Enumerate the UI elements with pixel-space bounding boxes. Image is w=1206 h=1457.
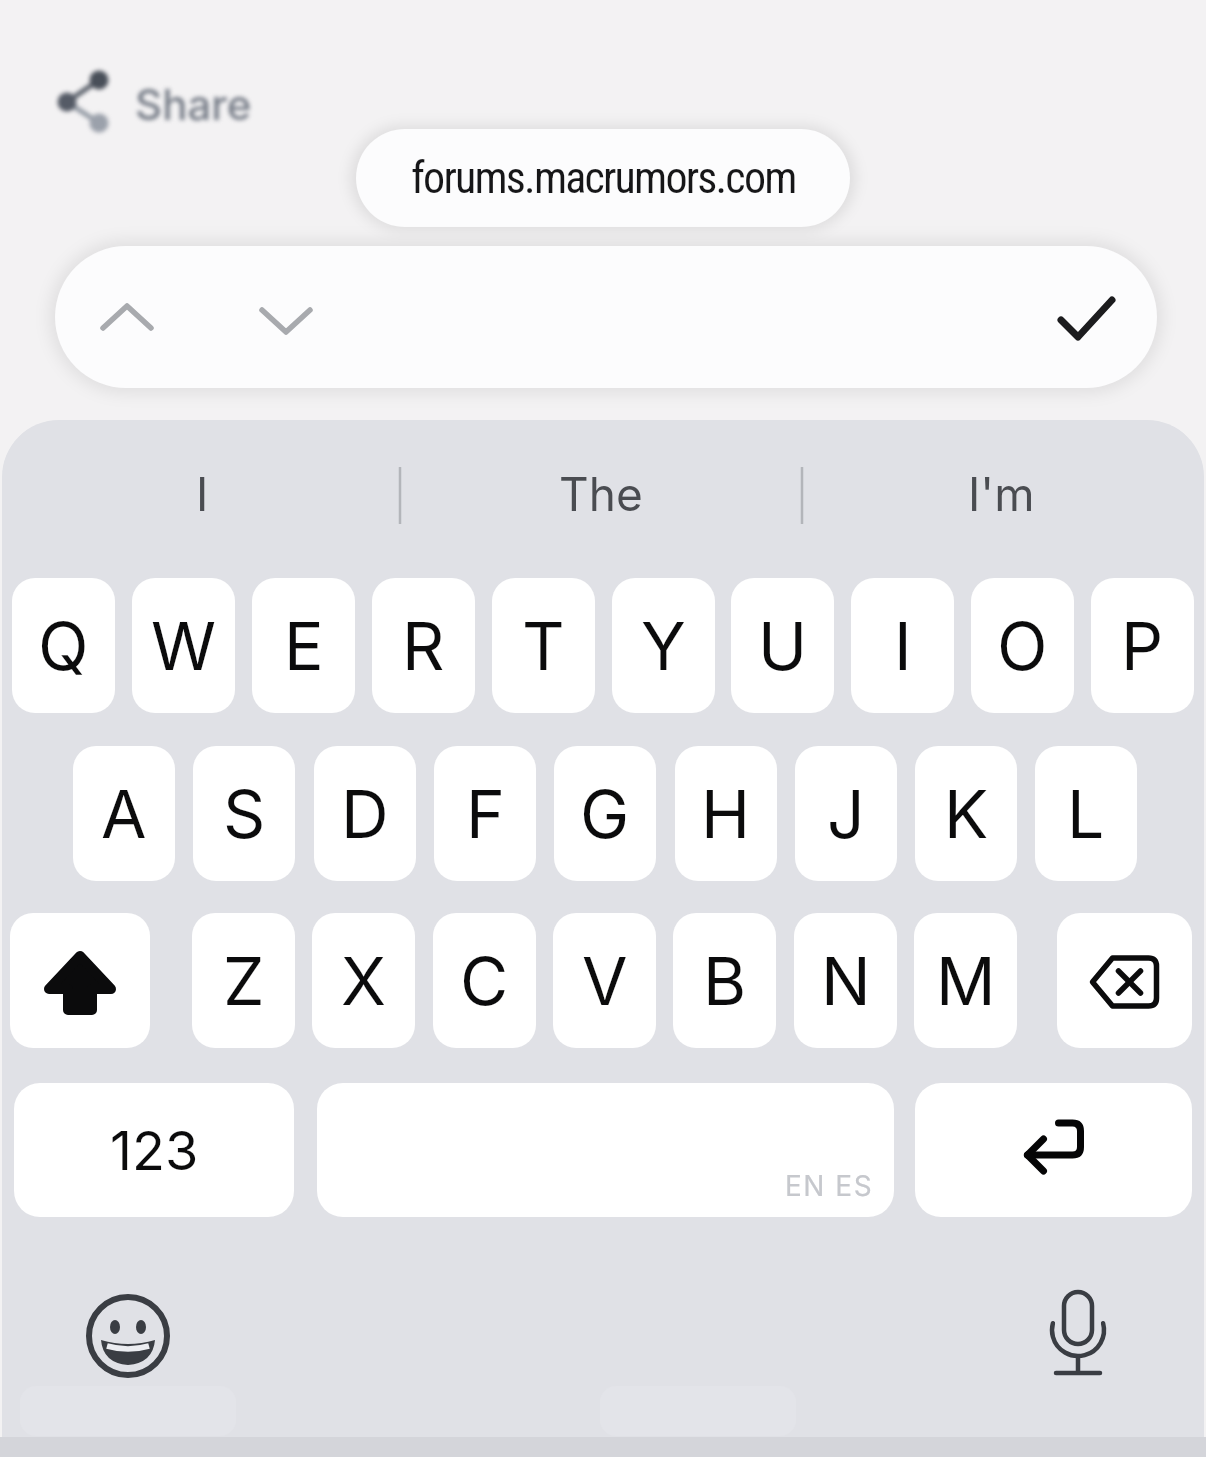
staticText: E [284, 606, 324, 686]
button[interactable]: A [73, 746, 175, 881]
button[interactable]: F [434, 746, 536, 881]
button[interactable]: I [851, 578, 954, 713]
staticText: Share [135, 79, 252, 130]
button[interactable]: E [252, 578, 355, 713]
button[interactable]: W [132, 578, 235, 713]
staticText: I [196, 466, 209, 522]
button[interactable]: I'm [807, 450, 1196, 538]
button[interactable]: T [492, 578, 595, 713]
staticText: X [341, 941, 387, 1021]
button[interactable]: D [314, 746, 416, 881]
staticText: forums.macrumors.com [411, 152, 796, 204]
button[interactable]: U [731, 578, 834, 713]
button[interactable]: Share [55, 66, 285, 138]
staticText: Y [641, 606, 686, 686]
button[interactable] [78, 1286, 178, 1386]
button[interactable]: P [1091, 578, 1194, 713]
staticText: 123 [110, 1118, 199, 1183]
button[interactable]: I [10, 450, 395, 538]
button[interactable]: N [794, 913, 897, 1048]
staticText: P [1121, 606, 1164, 686]
staticText: U [758, 606, 808, 686]
button[interactable]: C [433, 913, 536, 1048]
staticText: H [701, 774, 751, 854]
button[interactable]: EN ES [317, 1083, 894, 1217]
staticText: N [821, 941, 871, 1021]
button[interactable] [10, 913, 150, 1048]
button[interactable] [915, 1083, 1192, 1217]
staticText: B [703, 941, 747, 1021]
button[interactable] [1031, 262, 1141, 372]
button[interactable]: Q [12, 578, 115, 713]
button[interactable]: M [914, 913, 1017, 1048]
staticText: O [997, 606, 1048, 686]
button[interactable]: R [372, 578, 475, 713]
staticText: Q [38, 606, 89, 686]
staticText: M [936, 941, 996, 1021]
staticText: G [580, 774, 630, 854]
button[interactable]: Z [192, 913, 295, 1048]
button[interactable]: O [971, 578, 1074, 713]
staticText: R [402, 606, 445, 686]
staticText: C [460, 941, 509, 1021]
staticText: A [101, 774, 147, 854]
staticText: Z [223, 941, 265, 1021]
staticText: F [466, 774, 505, 854]
button[interactable]: Y [612, 578, 715, 713]
button[interactable]: J [795, 746, 897, 881]
button[interactable] [1057, 913, 1192, 1048]
staticText: I [894, 606, 912, 686]
staticText: T [522, 606, 565, 686]
staticText: K [944, 774, 989, 854]
button[interactable]: The [405, 450, 797, 538]
button[interactable]: L [1035, 746, 1137, 881]
button[interactable]: V [553, 913, 656, 1048]
staticText: V [582, 941, 628, 1021]
staticText: S [223, 774, 266, 854]
button[interactable]: 123 [14, 1083, 294, 1217]
staticText: W [151, 606, 217, 686]
button[interactable]: B [673, 913, 776, 1048]
button[interactable]: X [312, 913, 415, 1048]
button[interactable]: forums.macrumors.com [356, 129, 850, 227]
button[interactable]: H [675, 746, 777, 881]
button[interactable]: G [554, 746, 656, 881]
staticText: The [559, 466, 643, 522]
staticText: EN ES [785, 1169, 874, 1203]
button[interactable] [72, 262, 182, 372]
button[interactable]: S [193, 746, 295, 881]
staticText: D [341, 774, 389, 854]
staticText: J [827, 774, 865, 854]
button[interactable]: K [915, 746, 1017, 881]
button[interactable] [1028, 1282, 1128, 1386]
staticText: I'm [968, 466, 1035, 522]
staticText: L [1067, 774, 1105, 854]
button[interactable] [231, 262, 341, 372]
